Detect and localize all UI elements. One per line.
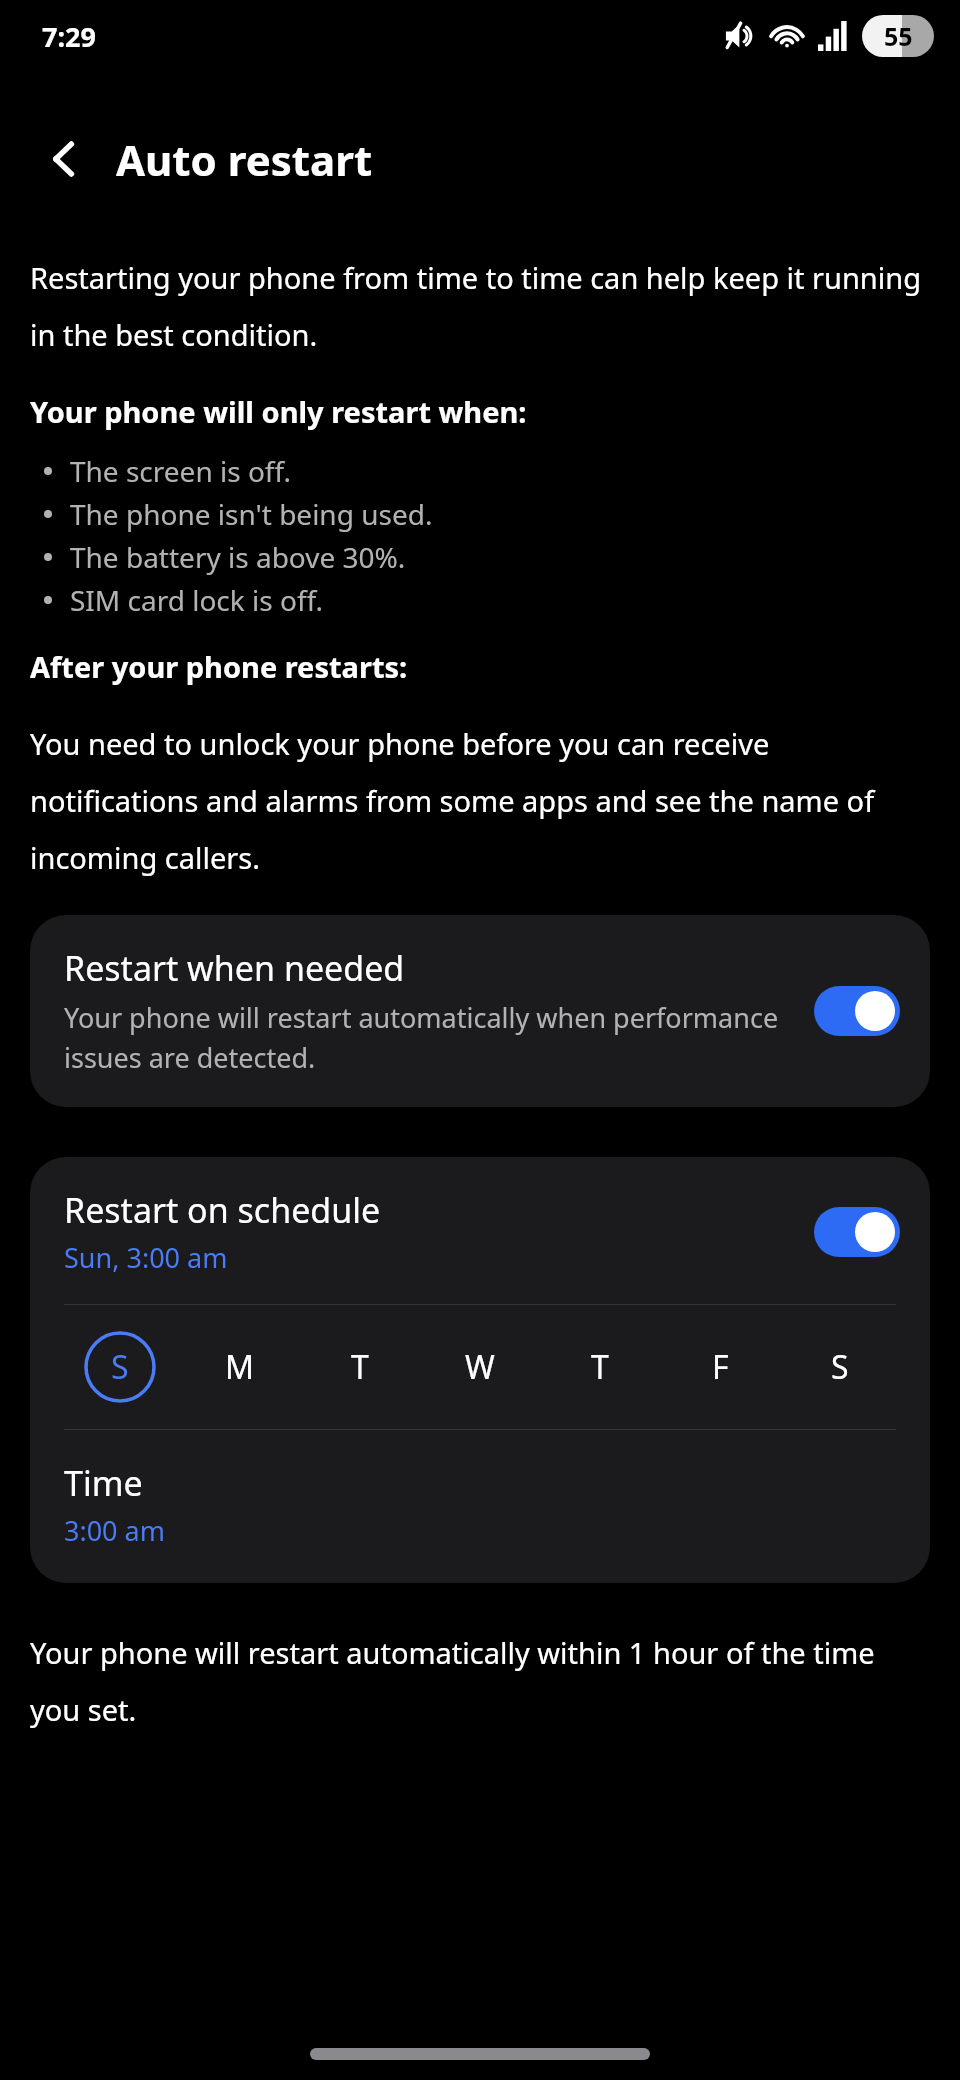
staticText: Your phone will restart automatically wi… bbox=[30, 1619, 930, 1733]
staticText: M bbox=[225, 1345, 255, 1389]
staticText: T bbox=[591, 1345, 609, 1389]
staticText: 55 bbox=[884, 19, 913, 53]
staticText: The phone isn't being used. bbox=[70, 495, 433, 533]
button[interactable]: F bbox=[660, 1329, 780, 1405]
staticText: Your phone will only restart when: bbox=[30, 392, 527, 431]
button[interactable]: M bbox=[180, 1329, 300, 1405]
button[interactable]: T bbox=[540, 1329, 660, 1405]
staticText: Restart when needed bbox=[64, 945, 405, 991]
staticText: S bbox=[111, 1345, 129, 1389]
button[interactable]: S bbox=[60, 1329, 180, 1405]
staticText: Restarting your phone from time to time … bbox=[30, 244, 930, 358]
staticText: W bbox=[465, 1345, 495, 1389]
staticText: Your phone will restart automatically wh… bbox=[64, 997, 798, 1077]
button[interactable]: Toggle bbox=[814, 986, 900, 1036]
button[interactable]: W bbox=[420, 1329, 540, 1405]
staticText: Sun, 3:00 am bbox=[64, 1239, 228, 1276]
staticText: The battery is above 30%. bbox=[70, 538, 406, 576]
staticText: 3:00 am bbox=[64, 1512, 165, 1549]
staticText: T bbox=[351, 1345, 369, 1389]
button[interactable]: T bbox=[300, 1329, 420, 1405]
staticText: You need to unlock your phone before you… bbox=[30, 710, 930, 881]
staticText: 7:29 bbox=[42, 18, 96, 55]
button[interactable]: Restart on schedule bbox=[30, 1157, 930, 1304]
staticText: Time bbox=[64, 1460, 143, 1506]
button[interactable]: Time bbox=[30, 1430, 930, 1583]
button[interactable]: Toggle bbox=[814, 1207, 900, 1257]
staticText: After your phone restarts: bbox=[30, 647, 408, 686]
staticText: Auto restart bbox=[116, 131, 373, 188]
button[interactable]: Back bbox=[30, 123, 102, 195]
staticText: SIM card lock is off. bbox=[70, 581, 324, 619]
staticText: The screen is off. bbox=[70, 452, 292, 490]
button[interactable]: S bbox=[780, 1329, 900, 1405]
button[interactable]: Restart when needed bbox=[30, 915, 930, 1107]
staticText: S bbox=[831, 1345, 849, 1389]
staticText: F bbox=[712, 1345, 729, 1389]
staticText: Restart on schedule bbox=[64, 1187, 381, 1233]
